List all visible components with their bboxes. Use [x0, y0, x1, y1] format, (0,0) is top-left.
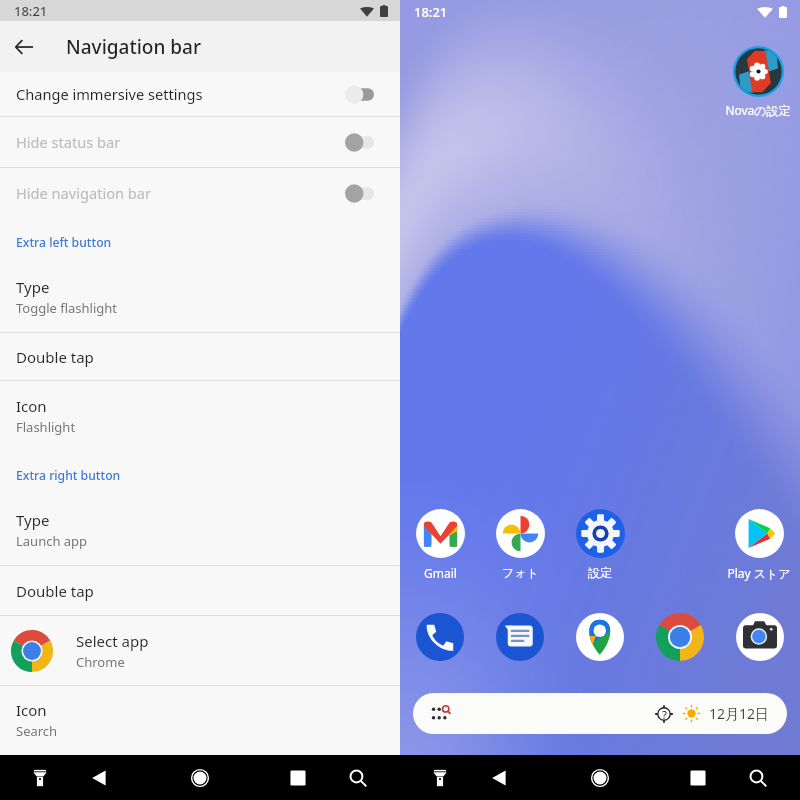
button[interactable]: フォト [480, 508, 560, 580]
staticText: 18:21 [14, 2, 48, 20]
button[interactable]: Flashlight [418, 755, 462, 800]
button[interactable]: Type [0, 262, 400, 332]
button[interactable]: Phone [415, 612, 465, 662]
button[interactable]: Back [477, 755, 521, 800]
staticText: Double tap [16, 581, 94, 601]
button[interactable]: Change immersive settings [0, 72, 400, 116]
staticText: Search [16, 722, 58, 740]
button[interactable]: Maps [575, 612, 625, 662]
button[interactable]: Select app [0, 616, 400, 685]
staticText: Extra left button [16, 234, 112, 251]
staticText: Novaの設定 [725, 102, 791, 118]
button[interactable]: Hide status bar [0, 117, 400, 167]
staticText: Select app [76, 631, 149, 651]
staticText: 12月12日 [709, 704, 770, 723]
button[interactable]: Chrome [655, 612, 705, 662]
staticText: Chrome [76, 653, 125, 671]
button[interactable]: Novaの設定 [718, 46, 798, 118]
staticText: Gmail [424, 565, 457, 581]
button[interactable]: Double tap [0, 333, 400, 380]
button[interactable]: Icon [0, 686, 400, 754]
staticText: Hide navigation bar [16, 183, 345, 203]
staticText: Launch app [16, 532, 88, 550]
button[interactable]: 設定 [560, 508, 640, 580]
button[interactable]: ? [413, 693, 787, 734]
button[interactable]: Flashlight [18, 755, 62, 800]
staticText: ? [662, 707, 667, 722]
button[interactable]: Search [336, 755, 380, 800]
button[interactable]: Home [178, 755, 222, 800]
button[interactable]: Back [77, 755, 121, 800]
button[interactable]: Play ストア [719, 508, 799, 581]
button[interactable]: Gmail [400, 508, 480, 581]
staticText: 設定 [588, 565, 612, 580]
button[interactable]: Camera [735, 612, 785, 662]
button[interactable]: Home [578, 755, 622, 800]
staticText: Icon [16, 700, 47, 720]
button[interactable]: Back [0, 23, 48, 71]
staticText: Double tap [16, 347, 94, 367]
button[interactable]: Double tap [0, 566, 400, 615]
button[interactable]: Messages [495, 612, 545, 662]
button[interactable]: Recents [676, 755, 720, 800]
button[interactable]: Type [0, 495, 400, 565]
staticText: Type [16, 510, 50, 530]
staticText: フォト [502, 565, 539, 580]
staticText: Extra right button [16, 467, 121, 484]
staticText: Type [16, 277, 50, 297]
staticText: Flashlight [16, 418, 76, 436]
button[interactable]: Hide navigation bar [0, 168, 400, 218]
staticText: Change immersive settings [16, 84, 345, 104]
staticText: 18:21 [414, 3, 448, 21]
staticText: Hide status bar [16, 132, 345, 152]
staticText: Icon [16, 396, 47, 416]
button[interactable]: Icon [0, 381, 400, 451]
staticText: Toggle flashlight [16, 299, 118, 317]
button[interactable]: Recents [276, 755, 320, 800]
button[interactable]: Search [736, 755, 780, 800]
staticText: Navigation bar [66, 34, 201, 60]
staticText: Play ストア [727, 565, 791, 581]
